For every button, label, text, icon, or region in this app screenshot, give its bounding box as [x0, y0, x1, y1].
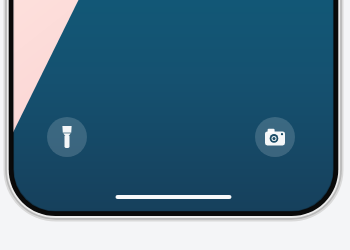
- button[interactable]: Camera: [255, 117, 295, 157]
- button[interactable]: Flashlight: [47, 117, 87, 157]
- button[interactable]: Home: [110, 188, 238, 208]
